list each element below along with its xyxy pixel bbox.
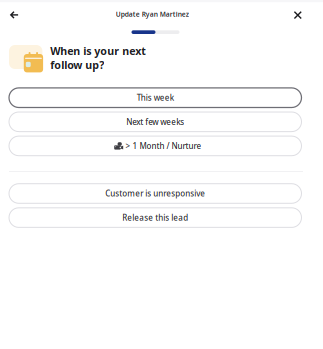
button[interactable]: > 1 Month / Nurture [9, 136, 301, 156]
staticText: > 1 Month / Nurture [125, 141, 201, 151]
button[interactable]: Customer is unresponsive [9, 184, 301, 203]
staticText: Update Ryan Martinez [116, 10, 189, 19]
button[interactable]: Next few weeks [9, 112, 301, 132]
staticText: When is your next [50, 44, 146, 58]
button[interactable]: This week [9, 88, 301, 107]
staticText: Release this lead [122, 212, 188, 223]
staticText: This week [137, 92, 174, 103]
button[interactable]: Close [285, 3, 311, 27]
staticText: Next few weeks [126, 116, 184, 127]
button[interactable]: Back [1, 3, 27, 27]
button[interactable]: Release this lead [9, 208, 301, 227]
staticText: follow up? [50, 58, 104, 72]
staticText: Customer is unresponsive [105, 188, 205, 199]
